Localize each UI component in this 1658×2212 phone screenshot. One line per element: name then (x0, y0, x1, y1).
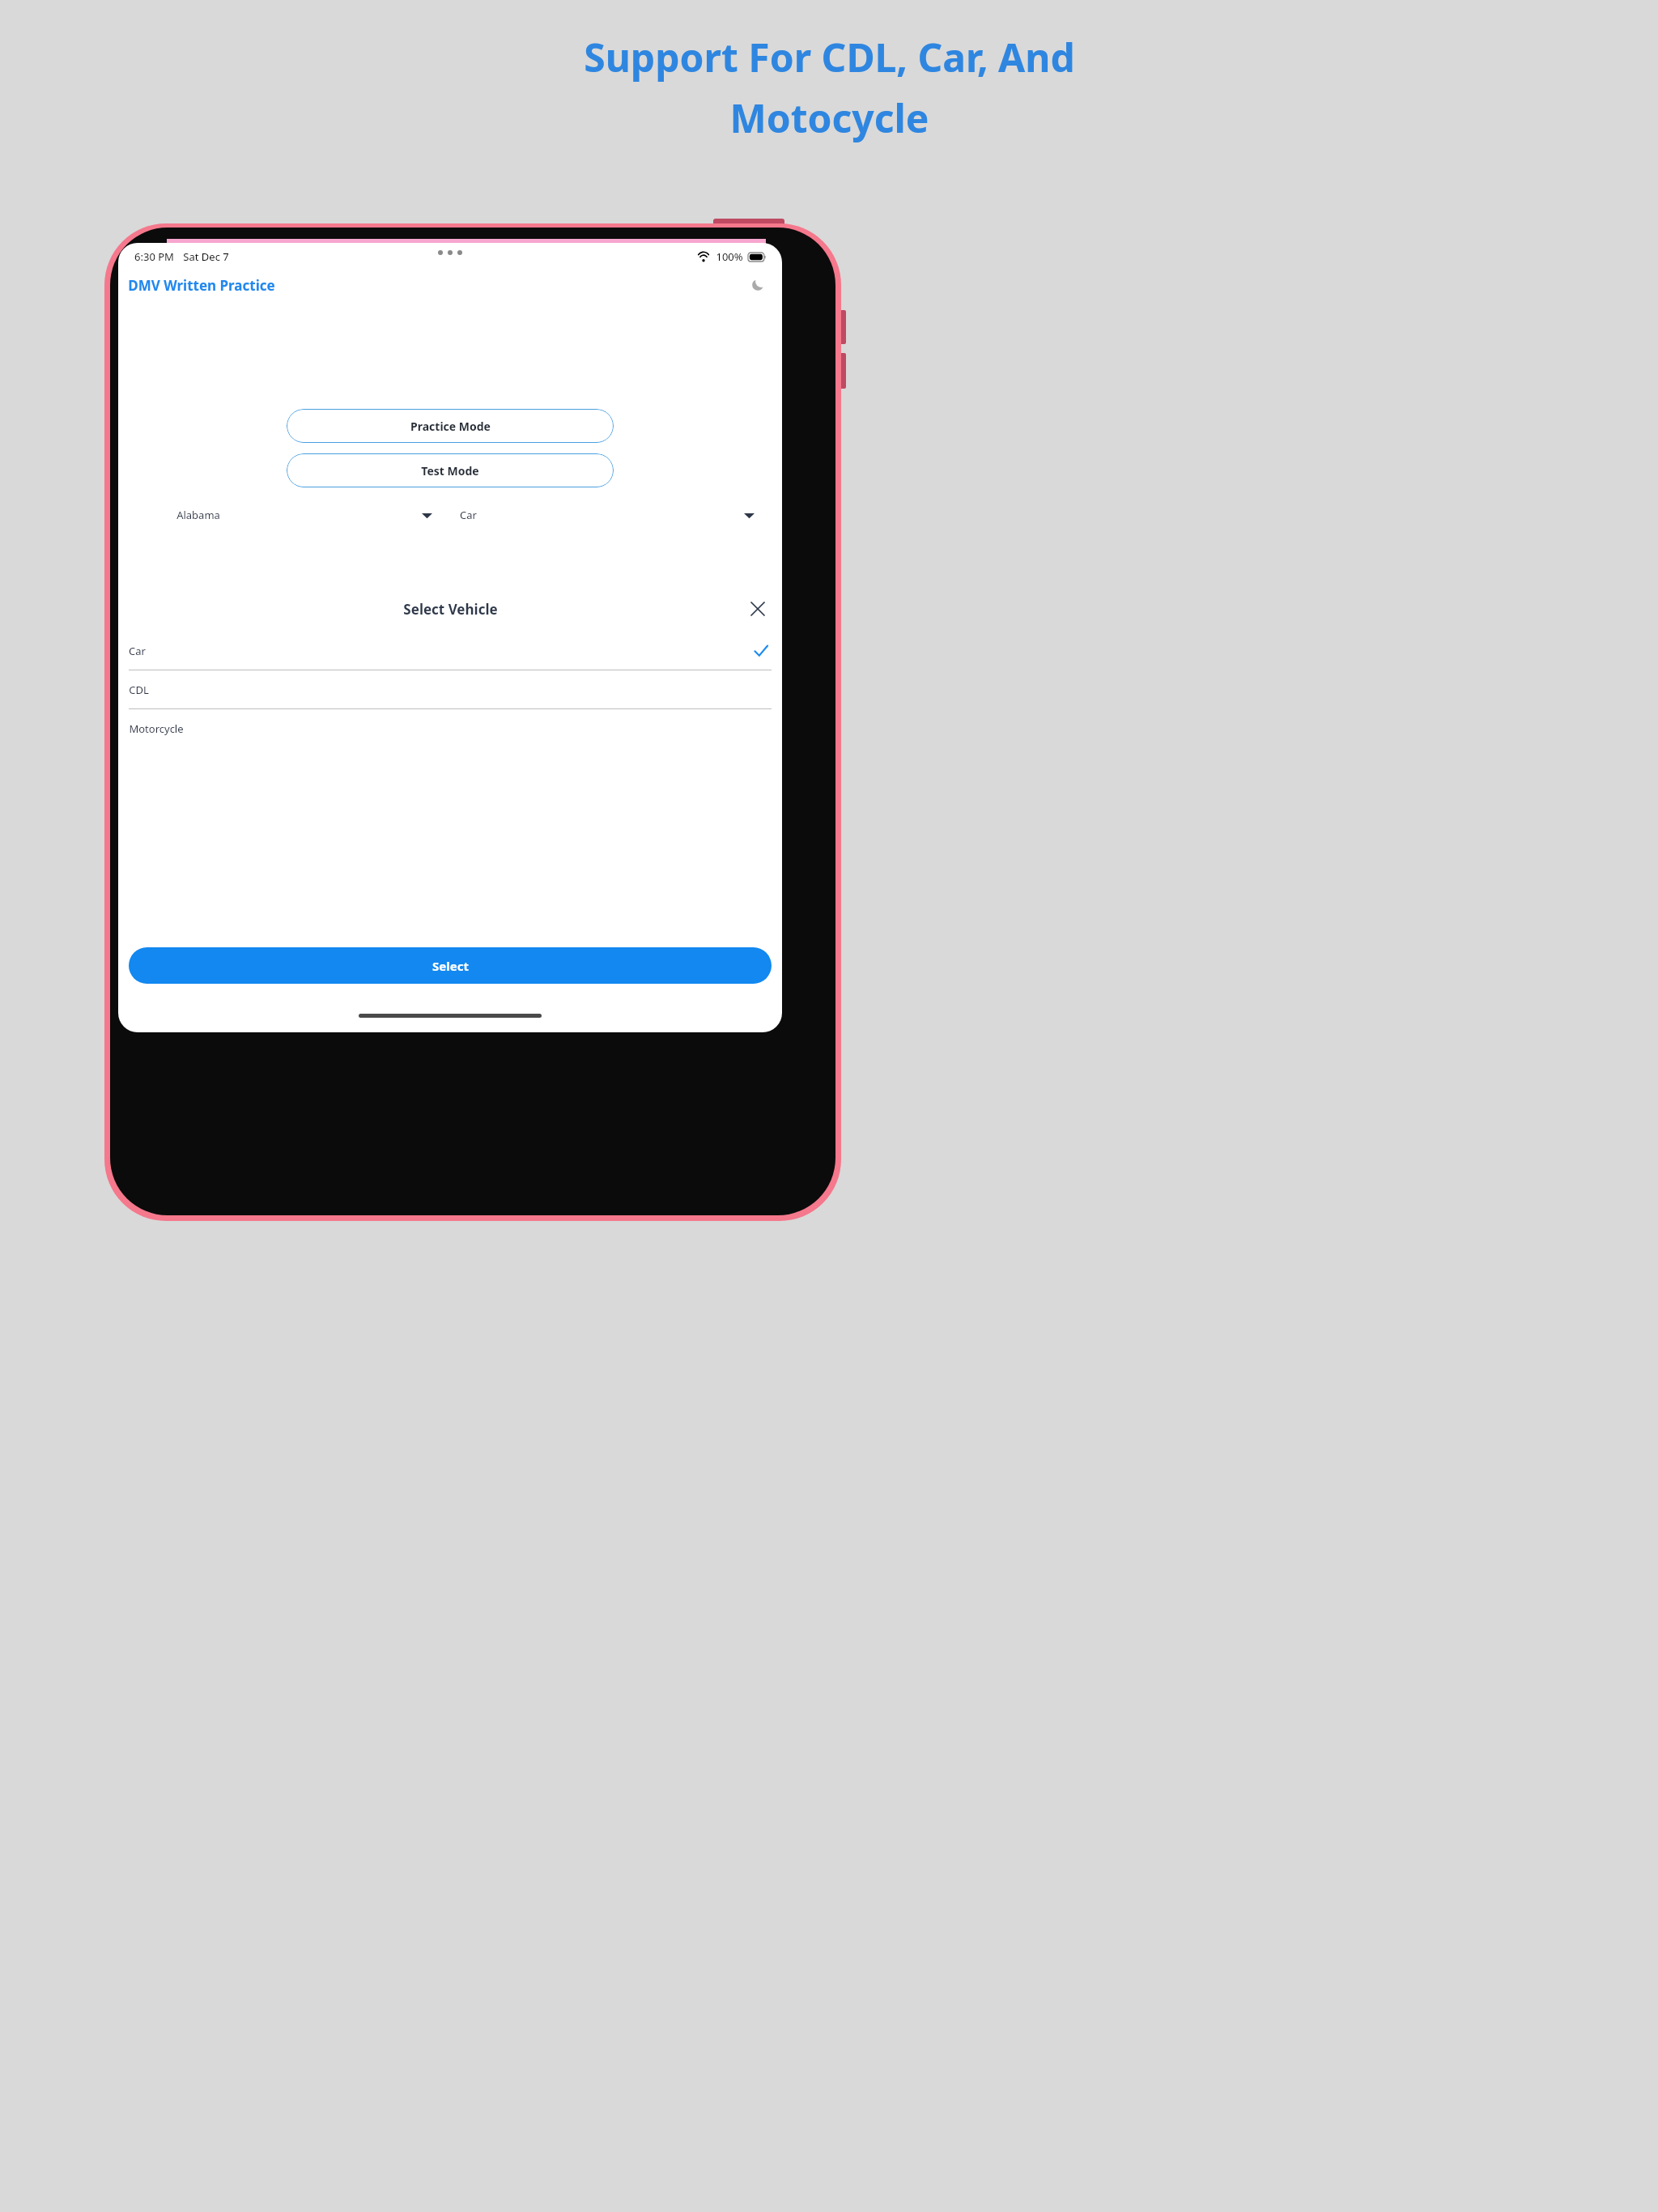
staticText: Select Vehicle (403, 600, 498, 619)
staticText: 100% (716, 249, 743, 264)
button[interactable]: Select (129, 947, 772, 984)
button[interactable]: Car (460, 500, 755, 530)
button[interactable]: Toggle dark mode (743, 270, 772, 300)
staticText: Car (460, 508, 477, 522)
staticText: Car (129, 644, 146, 658)
staticText: Motorcycle (129, 721, 184, 736)
button[interactable]: Alabama (176, 500, 432, 530)
staticText: PM (158, 249, 174, 264)
button[interactable]: CDL (118, 670, 782, 708)
staticText: Alabama (176, 508, 220, 522)
staticText: Test Mode (421, 463, 479, 479)
staticText: Sat Dec 7 (183, 249, 229, 264)
button[interactable]: Close (743, 594, 772, 623)
staticText: Select (432, 958, 469, 974)
button[interactable]: Motorcycle (118, 709, 782, 747)
button[interactable]: Practice Mode (287, 409, 614, 443)
staticText: Motocycle (729, 91, 929, 144)
staticText: Practice Mode (410, 419, 491, 434)
staticText: DMV Written Practice (128, 276, 275, 295)
staticText: 6:30 (134, 249, 155, 264)
button[interactable]: Test Mode (287, 453, 614, 487)
staticText: Support For CDL, Car, And (584, 31, 1075, 83)
button[interactable]: Car (118, 632, 782, 670)
staticText: CDL (129, 683, 149, 697)
